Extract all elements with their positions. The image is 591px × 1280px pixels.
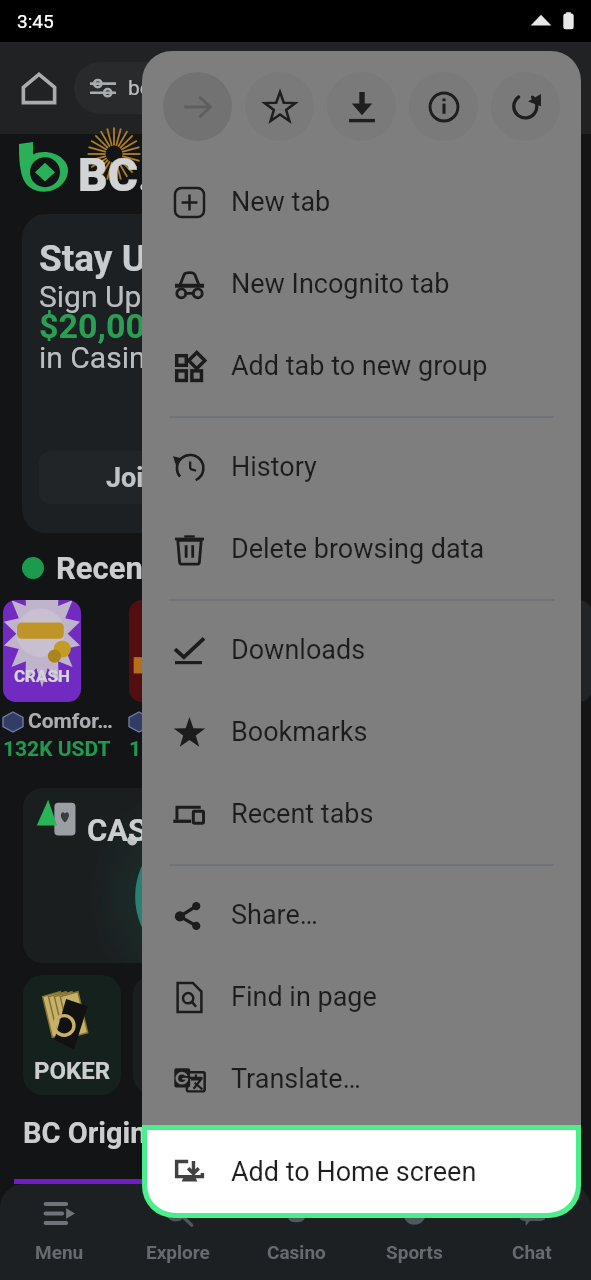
staticText: POKER — [34, 1057, 111, 1085]
button[interactable]: Ami… — [325, 600, 404, 762]
button[interactable]: Explore — [119, 1184, 237, 1280]
button[interactable]: Translate… — [142, 1038, 581, 1120]
staticText: Bookmarks — [231, 716, 368, 748]
staticText: History — [231, 451, 317, 483]
staticText: CASINO — [87, 812, 200, 848]
button[interactable]: Nmu… — [129, 600, 215, 762]
staticText: in Casino & Sports — [39, 340, 285, 375]
staticText: Casino — [267, 1241, 326, 1263]
staticText: bc.game — [128, 76, 210, 101]
button[interactable]: Find in page — [142, 956, 581, 1038]
button[interactable]: Share… — [142, 874, 581, 956]
button[interactable]: Join Now — [39, 451, 287, 504]
staticText: 4 — [231, 737, 244, 762]
staticText: New Incognito tab — [231, 268, 450, 300]
staticText: Recent tabs — [231, 798, 374, 830]
staticText: BC Originals — [23, 1116, 185, 1150]
button[interactable]: New Incognito tab — [142, 243, 581, 325]
staticText: Sign Up & Get — [39, 279, 221, 314]
button[interactable]: Download page — [320, 65, 402, 147]
staticText: 880 — [325, 737, 362, 762]
staticText: Downloads — [231, 634, 366, 666]
staticText: Explore — [146, 1241, 210, 1263]
staticText: Recent Big Wins — [56, 550, 284, 586]
button[interactable]: Delete browsing data — [142, 508, 581, 590]
button[interactable]: Recent tabs — [142, 773, 581, 855]
button[interactable]: Page info — [402, 65, 484, 147]
button[interactable]: Pg… — [231, 600, 309, 762]
button[interactable]: Casino — [237, 1184, 355, 1280]
staticText: Pg… — [256, 709, 297, 734]
button[interactable]: Forward — [156, 65, 238, 147]
staticText: $20,000 — [39, 306, 165, 346]
staticText: CRASH — [14, 666, 70, 686]
other: Home — [22, 71, 56, 105]
staticText: Comfor… — [28, 709, 113, 734]
button[interactable]: Menu — [0, 1184, 119, 1280]
button[interactable]: Lu… — [514, 600, 591, 762]
button[interactable]: New tab — [142, 161, 581, 243]
button[interactable]: Downloads — [142, 609, 581, 691]
button[interactable]: Sports — [355, 1184, 473, 1280]
staticText: Ami… — [350, 709, 404, 734]
staticText: Add tab to new group — [231, 350, 488, 382]
button[interactable]: Bookmark this page — [238, 65, 320, 147]
staticText: Sports — [386, 1241, 443, 1263]
staticText: New tab — [231, 186, 331, 218]
staticText: Translate… — [231, 1063, 361, 1095]
staticText: Menu — [35, 1241, 84, 1263]
staticText: Find in page — [231, 981, 377, 1013]
staticText: Delete browsing data — [231, 533, 485, 565]
button[interactable]: CRASH — [3, 600, 113, 762]
staticText: Stay Updated — [39, 237, 261, 280]
button[interactable]: Add to Home screen — [142, 1125, 581, 1218]
staticText: Add to Home screen — [231, 1156, 477, 1188]
button[interactable]: Chat — [473, 1184, 591, 1280]
staticText: Chat — [512, 1241, 552, 1263]
staticText: 1.337 E — [129, 737, 201, 762]
staticText: Nmu… — [154, 709, 215, 734]
staticText: 132K USDT — [3, 737, 111, 762]
button[interactable]: Reload — [484, 65, 566, 147]
staticText: Share… — [231, 899, 318, 931]
button[interactable]: History — [142, 426, 581, 508]
staticText: 3:45 — [17, 10, 54, 32]
button[interactable]: Add tab to new group — [142, 325, 581, 407]
staticText: BC.GAME — [78, 148, 281, 202]
staticText: Join Now — [106, 462, 220, 494]
button[interactable]: Bookmarks — [142, 691, 581, 773]
